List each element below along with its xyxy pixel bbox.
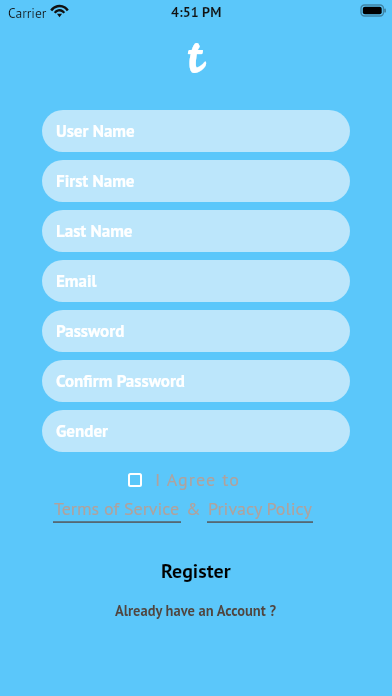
button[interactable]: I Agree checkbox xyxy=(128,473,142,487)
button[interactable]: Gender xyxy=(42,410,350,452)
other: Wi-Fi xyxy=(50,4,69,16)
staticText: & xyxy=(186,497,201,520)
staticText: Terms of Service xyxy=(54,497,180,520)
staticText: Privacy Policy xyxy=(208,497,312,520)
staticText: First Name xyxy=(56,170,135,192)
staticText: 4:51 PM xyxy=(171,3,222,21)
button[interactable]: Privacy Policy xyxy=(207,497,313,523)
button[interactable]: Already have an Account ? xyxy=(115,601,277,620)
button[interactable]: Email xyxy=(42,260,350,302)
button[interactable]: Last Name xyxy=(42,210,350,252)
staticText: Carrier xyxy=(8,4,47,21)
staticText: I Agree to xyxy=(155,468,240,491)
button[interactable]: Confirm Password xyxy=(42,360,350,402)
button[interactable]: Terms of Service xyxy=(53,497,181,523)
button[interactable]: Register xyxy=(161,558,231,584)
staticText: Email xyxy=(56,270,97,292)
button[interactable]: Password xyxy=(42,310,350,352)
other: Battery xyxy=(361,5,386,16)
staticText: t xyxy=(187,23,203,88)
staticText: User Name xyxy=(56,120,135,142)
button[interactable]: First Name xyxy=(42,160,350,202)
button[interactable]: User Name xyxy=(42,110,350,152)
staticText: Last Name xyxy=(56,220,133,242)
staticText: Gender xyxy=(56,420,109,442)
staticText: Password xyxy=(56,320,125,342)
staticText: Confirm Password xyxy=(56,370,186,392)
